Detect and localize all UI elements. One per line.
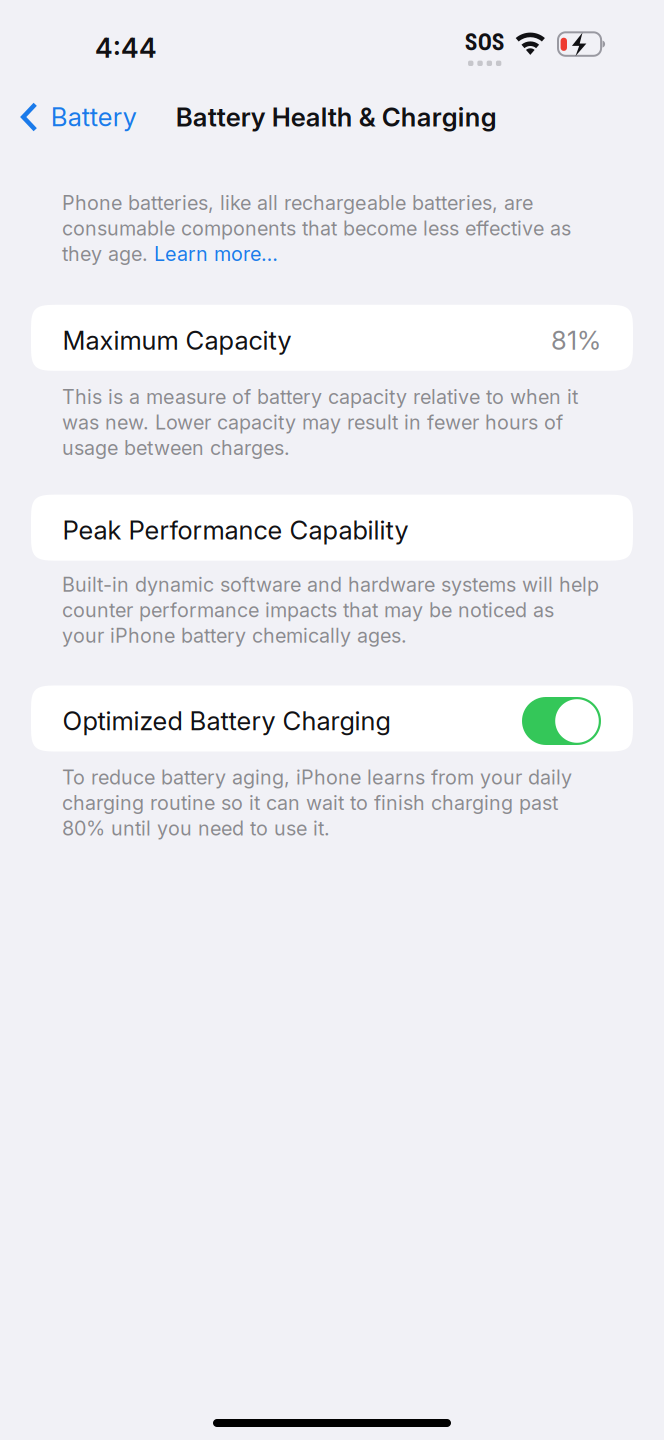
staticText: Phone batteries, like all rechargeable b… bbox=[62, 191, 571, 266]
staticText: SOS bbox=[465, 28, 505, 56]
staticText: Built-in dynamic software and hardware s… bbox=[62, 573, 599, 647]
staticText: 81% bbox=[551, 325, 601, 356]
button[interactable]: Peak Performance Capability bbox=[0, 495, 633, 561]
staticText: To reduce battery aging, iPhone learns f… bbox=[62, 765, 572, 840]
button[interactable]: Battery bbox=[0, 92, 151, 141]
staticText: Optimized Battery Charging bbox=[62, 705, 390, 736]
staticText: This is a measure of battery capacity re… bbox=[62, 385, 578, 460]
button[interactable]: Optimized Battery Charging bbox=[0, 685, 633, 751]
staticText: Maximum Capacity bbox=[62, 325, 291, 356]
button[interactable]: Maximum Capacity bbox=[0, 305, 633, 371]
staticText: Battery bbox=[51, 101, 137, 132]
staticText: Peak Performance Capability bbox=[62, 515, 408, 546]
staticText: 4:44 bbox=[95, 32, 157, 64]
staticText: Battery Health & Charging bbox=[176, 101, 497, 133]
